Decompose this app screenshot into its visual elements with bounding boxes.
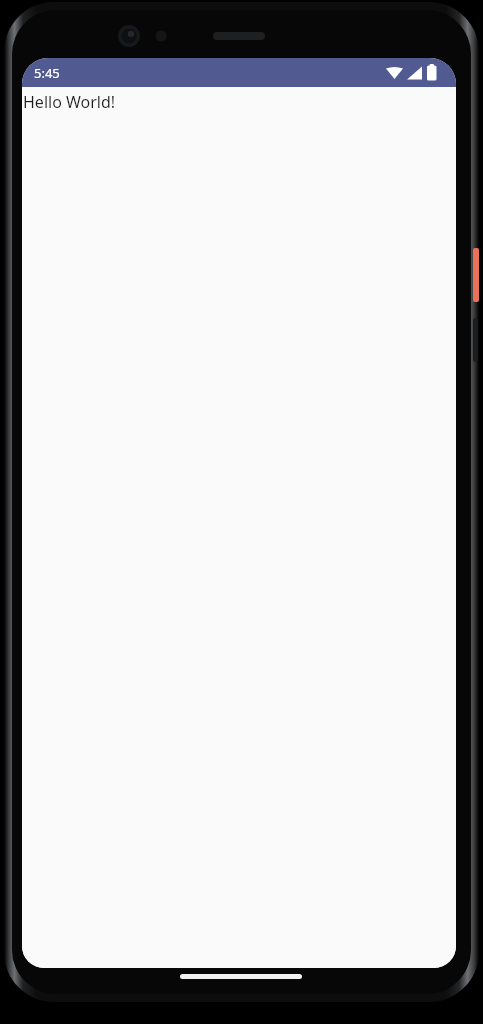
staticText: 5:45 <box>34 64 60 82</box>
staticText: Hello World! <box>23 91 116 113</box>
button[interactable]: Home <box>180 974 302 979</box>
button[interactable]: Power <box>473 248 479 302</box>
